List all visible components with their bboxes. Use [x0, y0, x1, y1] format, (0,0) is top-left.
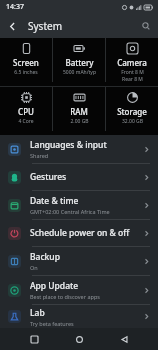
staticText: 4 Core: [18, 118, 34, 125]
button[interactable]: Gestures: [0, 164, 158, 190]
staticText: Lab: [30, 307, 45, 319]
button[interactable]: Date & time: [0, 191, 158, 219]
button[interactable]: App Update: [0, 276, 158, 304]
staticText: GMT+02:00 Central Africa Time: [30, 208, 110, 215]
button[interactable]: Storage: [106, 87, 158, 125]
staticText: 5000 mAh/typ: [63, 69, 96, 76]
button[interactable]: Home: [68, 328, 90, 350]
button[interactable]: Screen: [0, 38, 52, 76]
staticText: Storage: [117, 106, 147, 117]
staticText: Best place to discover apps: [30, 293, 100, 300]
button[interactable]: Back: [113, 328, 135, 350]
button[interactable]: Back: [0, 14, 24, 38]
staticText: 6.5 inches: [14, 69, 38, 76]
staticText: Screen: [13, 57, 39, 68]
staticText: Gestures: [30, 171, 67, 183]
staticText: Date & time: [30, 195, 79, 207]
staticText: 32.00 GB: [122, 118, 143, 125]
staticText: Shared: [30, 152, 49, 159]
staticText: App Update: [30, 280, 79, 292]
button[interactable]: Search: [134, 14, 158, 38]
staticText: Try beta features: [30, 320, 74, 327]
staticText: 14:37: [6, 2, 24, 12]
staticText: Camera: [117, 57, 147, 68]
staticText: Rear 8 M: [122, 76, 143, 83]
button[interactable]: Camera: [106, 38, 158, 83]
button[interactable]: CPU: [0, 87, 52, 125]
staticText: Backup: [30, 251, 60, 263]
staticText: System: [28, 19, 62, 33]
button[interactable]: Languages & input: [0, 135, 158, 163]
staticText: Front 8 M: [121, 69, 144, 76]
staticText: Battery: [65, 57, 94, 68]
staticText: CPU: [18, 106, 34, 117]
button[interactable]: Lab: [0, 305, 158, 328]
staticText: Schedule power on & off: [30, 227, 130, 239]
button[interactable]: RAM: [53, 87, 105, 125]
staticText: RAM: [70, 106, 88, 117]
button[interactable]: Battery: [53, 38, 105, 76]
staticText: On: [30, 264, 38, 271]
staticText: Languages & input: [30, 139, 107, 151]
staticText: 2.00 GB: [70, 118, 89, 125]
button[interactable]: Backup: [0, 247, 158, 275]
button[interactable]: Schedule power on & off: [0, 220, 158, 246]
button[interactable]: Recent apps: [23, 328, 45, 350]
